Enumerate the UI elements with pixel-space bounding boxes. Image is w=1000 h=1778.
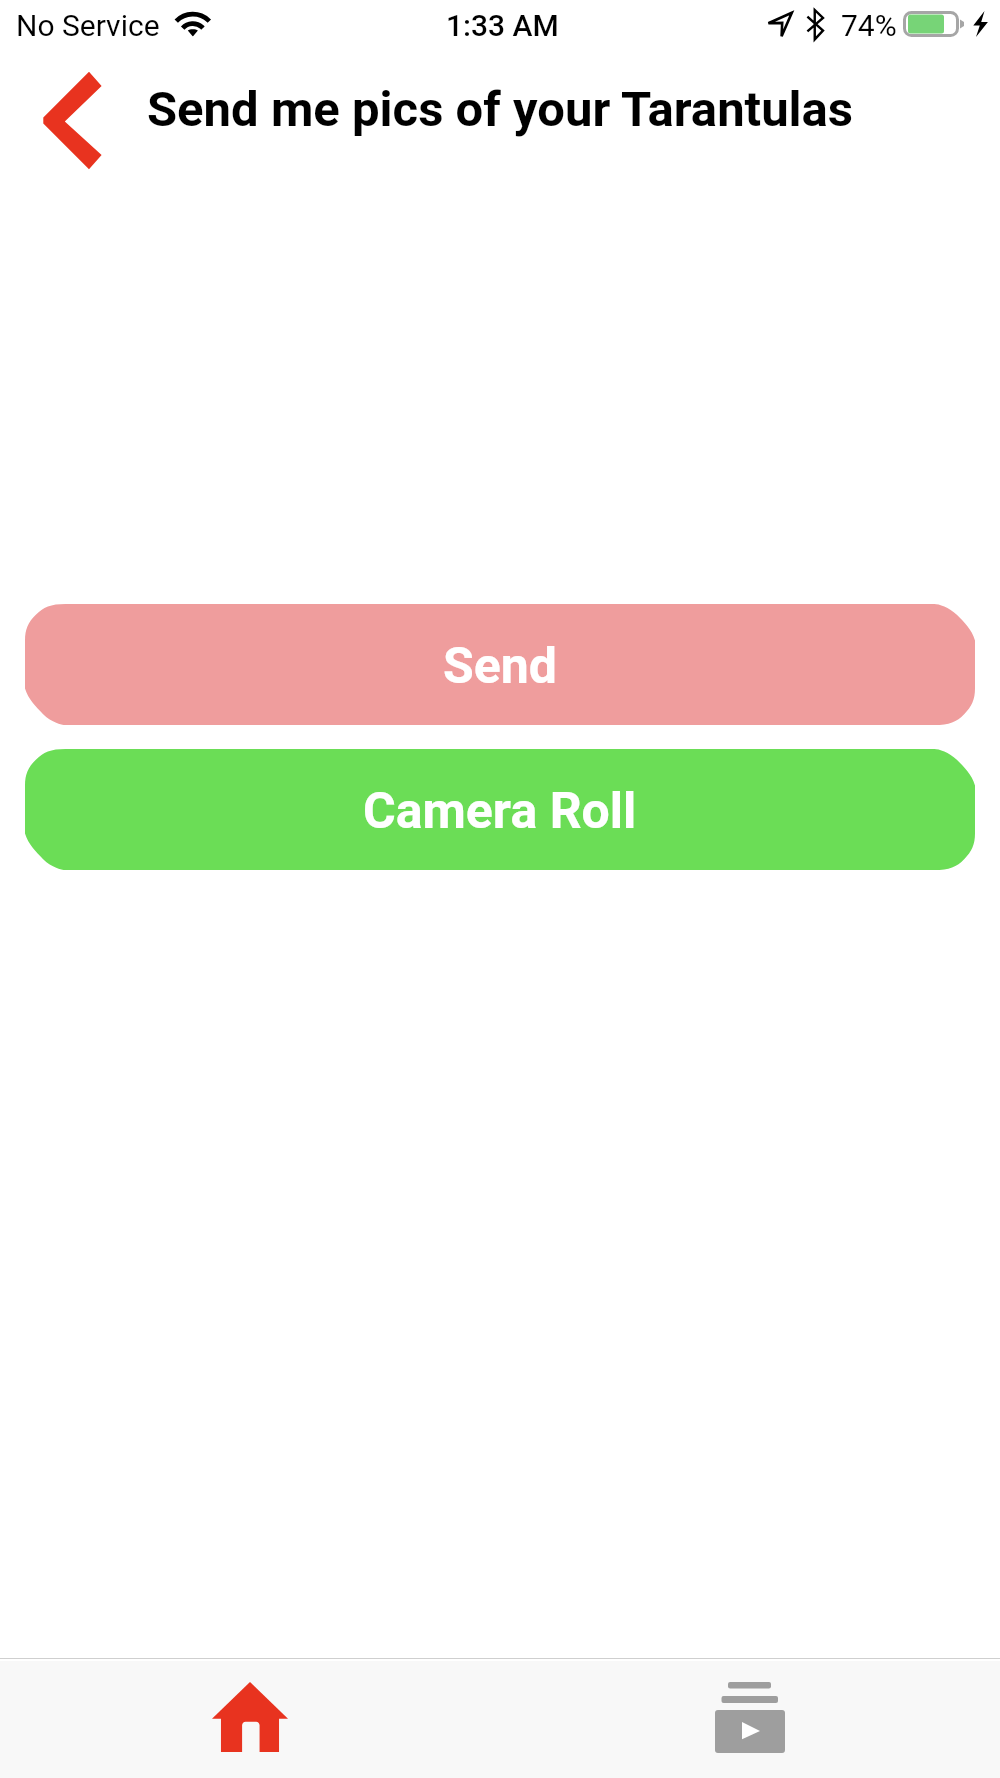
button[interactable]: Home	[0, 1661, 500, 1778]
staticText: No Service	[16, 8, 160, 43]
staticText: Send	[443, 637, 557, 696]
button[interactable]: Library	[500, 1661, 1000, 1778]
button[interactable]: Back	[40, 60, 130, 180]
button[interactable]: Camera Roll	[25, 749, 975, 870]
staticText: 1:33 AM	[446, 8, 559, 43]
staticText: Send me pics of your Tarantulas	[147, 81, 854, 138]
staticText: Camera Roll	[363, 782, 637, 841]
staticText: 74%	[841, 8, 897, 43]
button[interactable]: Send	[25, 604, 975, 725]
